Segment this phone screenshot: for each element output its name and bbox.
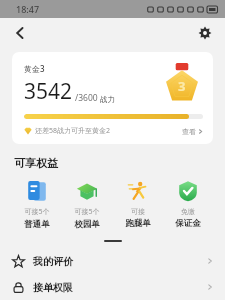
staticText: 我的评价 bbox=[33, 255, 207, 268]
button[interactable]: 查看 bbox=[182, 127, 203, 136]
staticText: 黄金3 bbox=[24, 63, 45, 74]
staticText: 18:47 bbox=[16, 3, 40, 15]
button[interactable]: 可接5个 bbox=[64, 180, 110, 230]
staticText: 可接5个 bbox=[74, 207, 100, 217]
button[interactable]: 可接 bbox=[115, 180, 161, 229]
button[interactable]: 接单权限 bbox=[0, 274, 225, 300]
button[interactable]: 我的评价 bbox=[0, 248, 225, 274]
staticText: 3542 bbox=[24, 77, 73, 106]
staticText: 还差58战力可升至黄金2 bbox=[35, 126, 182, 136]
button[interactable]: 可接5个 bbox=[14, 180, 60, 230]
staticText: 3 bbox=[178, 77, 186, 95]
staticText: 可接5个 bbox=[24, 207, 50, 217]
staticText: 查看 bbox=[182, 127, 196, 136]
staticText: 免缴 bbox=[181, 207, 195, 216]
staticText: 校园单 bbox=[74, 219, 100, 230]
staticText: 战力 bbox=[100, 95, 115, 104]
staticText: 保证金 bbox=[175, 218, 201, 229]
staticText: 跑腿单 bbox=[125, 218, 151, 229]
staticText: 普通单 bbox=[24, 219, 50, 230]
staticText: 可享权益 bbox=[14, 156, 58, 170]
staticText: /3600 bbox=[75, 92, 98, 104]
button[interactable]: 免缴 bbox=[165, 180, 211, 229]
button[interactable]: Back bbox=[8, 21, 32, 45]
button[interactable]: Settings bbox=[193, 21, 217, 45]
staticText: 可接 bbox=[131, 207, 145, 216]
staticText: 接单权限 bbox=[33, 281, 207, 294]
button[interactable]: 黄金3 bbox=[12, 52, 213, 144]
